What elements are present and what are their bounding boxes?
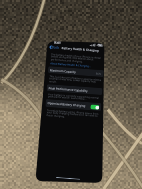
staticText: To reduce battery aging, iPhone learns f… xyxy=(46,108,99,121)
staticText: The battery health of your iPhone is sho… xyxy=(51,52,103,65)
staticText: Back xyxy=(51,44,60,50)
staticText: This is a measure of battery capacity re… xyxy=(49,74,101,87)
staticText: 86% xyxy=(96,72,102,76)
button[interactable]: Maximum Capacity xyxy=(48,66,104,77)
button[interactable]: Peak Performance Capability xyxy=(46,84,103,95)
staticText: Your battery is currently supporting nor… xyxy=(48,92,100,102)
staticText: Optimized Battery Charging xyxy=(47,101,86,108)
staticText: Maximum Capacity xyxy=(50,68,76,74)
other: Optimized Battery Charging toggle xyxy=(90,104,99,110)
button[interactable]: Back xyxy=(46,44,61,50)
button[interactable]: About Battery Health & Charging… xyxy=(50,61,91,67)
button[interactable]: Optimized Battery Charging xyxy=(45,99,102,111)
staticText: 9:41 xyxy=(54,39,61,45)
staticText: Battery Health & Charging xyxy=(61,46,100,53)
staticText: Peak Performance Capability xyxy=(48,86,89,93)
